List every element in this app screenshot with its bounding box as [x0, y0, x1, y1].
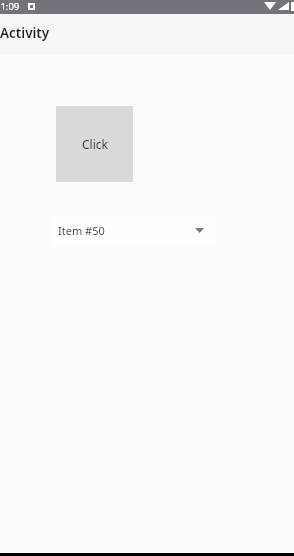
- staticText: Item #50: [58, 223, 105, 238]
- staticText: 11:09: [0, 0, 20, 13]
- button[interactable]: Click: [56, 106, 133, 182]
- other: Open dropdown: [195, 228, 204, 233]
- button[interactable]: Item #50: [52, 216, 215, 245]
- staticText: Activity: [0, 24, 50, 42]
- staticText: Click: [82, 136, 108, 152]
